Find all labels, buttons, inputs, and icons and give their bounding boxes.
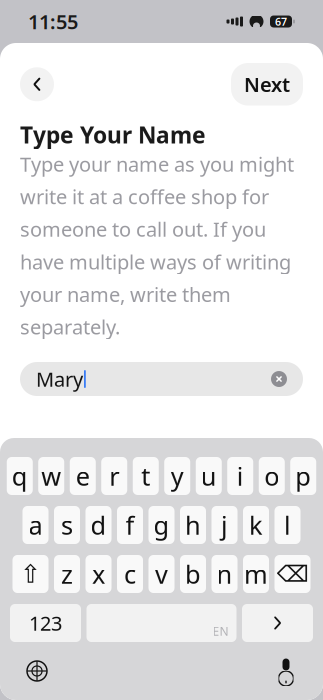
- staticText: ⌫: [276, 561, 308, 587]
- staticText: Next: [244, 71, 290, 98]
- button[interactable]: z: [54, 555, 80, 593]
- button[interactable]: w: [38, 457, 64, 495]
- staticText: k: [249, 508, 263, 542]
- button[interactable]: t: [133, 457, 159, 495]
- staticText: u: [201, 459, 217, 493]
- staticText: 123: [29, 610, 62, 636]
- button[interactable]: a: [22, 506, 48, 544]
- button[interactable]: p: [290, 457, 316, 495]
- button[interactable]: m: [243, 555, 269, 593]
- staticText: q: [12, 459, 28, 493]
- staticText: 67: [275, 14, 287, 29]
- button[interactable]: r: [101, 457, 127, 495]
- button[interactable]: Mary: [20, 362, 303, 396]
- staticText: p: [295, 459, 311, 493]
- button[interactable]: l: [274, 506, 300, 544]
- staticText: y: [171, 459, 184, 493]
- staticText: ⇧: [20, 560, 41, 588]
- staticText: 11:55: [28, 8, 78, 35]
- button[interactable]: q: [7, 457, 33, 495]
- button[interactable]: Shift: [12, 555, 48, 593]
- staticText: h: [185, 508, 201, 542]
- button[interactable]: o: [259, 457, 285, 495]
- staticText: m: [244, 557, 268, 591]
- staticText: s: [61, 508, 73, 542]
- button[interactable]: f: [117, 506, 143, 544]
- button[interactable]: h: [180, 506, 206, 544]
- button[interactable]: v: [148, 555, 174, 593]
- staticText: z: [61, 557, 73, 591]
- button[interactable]: Change keyboard: [22, 656, 52, 686]
- staticText: EN: [212, 623, 228, 639]
- button[interactable]: k: [243, 506, 269, 544]
- staticText: j: [221, 508, 228, 542]
- button[interactable]: i: [227, 457, 253, 495]
- button[interactable]: j: [211, 506, 237, 544]
- button[interactable]: Dictation: [271, 656, 301, 686]
- button[interactable]: Space: [86, 604, 236, 642]
- staticText: b: [185, 557, 201, 591]
- button[interactable]: b: [180, 555, 206, 593]
- staticText: c: [124, 557, 136, 591]
- staticText: d: [90, 508, 106, 542]
- button[interactable]: x: [85, 555, 111, 593]
- button[interactable]: 123: [10, 604, 81, 642]
- staticText: x: [92, 557, 105, 591]
- staticText: g: [153, 508, 169, 542]
- staticText: o: [264, 459, 279, 493]
- button[interactable]: n: [211, 555, 237, 593]
- button[interactable]: g: [148, 506, 174, 544]
- button[interactable]: Delete: [274, 555, 310, 593]
- button[interactable]: s: [54, 506, 80, 544]
- button[interactable]: d: [85, 506, 111, 544]
- staticText: r: [109, 459, 119, 493]
- staticText: l: [284, 508, 291, 542]
- button[interactable]: c: [117, 555, 143, 593]
- button[interactable]: Back: [20, 67, 54, 101]
- staticText: n: [216, 557, 232, 591]
- button[interactable]: Next: [231, 63, 303, 106]
- staticText: f: [125, 508, 134, 542]
- button[interactable]: u: [196, 457, 222, 495]
- staticText: t: [141, 459, 150, 493]
- staticText: Mary: [36, 366, 83, 392]
- staticText: i: [237, 459, 244, 493]
- staticText: v: [155, 557, 168, 591]
- staticText: a: [28, 508, 42, 542]
- button[interactable]: Return: [242, 604, 313, 642]
- staticText: e: [76, 459, 90, 493]
- staticText: w: [41, 459, 61, 493]
- staticText: Type Your Name: [20, 120, 206, 150]
- staticText: Type your name as you might write it at …: [20, 151, 294, 340]
- button[interactable]: e: [70, 457, 96, 495]
- button[interactable]: y: [164, 457, 190, 495]
